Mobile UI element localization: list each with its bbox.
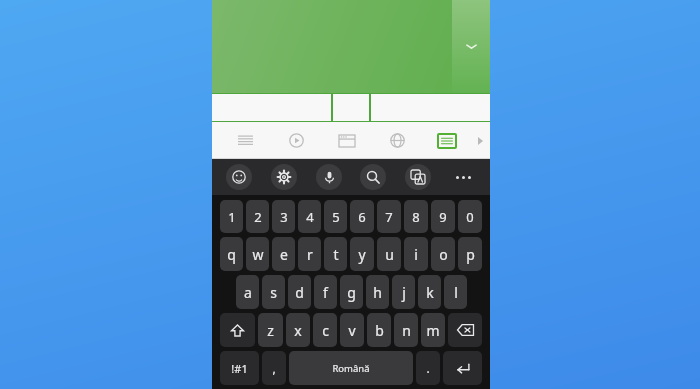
button[interactable]: l bbox=[444, 275, 467, 309]
staticText: c bbox=[322, 321, 329, 340]
staticText: u bbox=[385, 245, 394, 264]
staticText: q bbox=[227, 245, 236, 264]
staticText: i bbox=[414, 245, 418, 264]
button[interactable]: s bbox=[262, 275, 285, 309]
staticText: 3 bbox=[280, 208, 288, 226]
button[interactable]: f bbox=[314, 275, 337, 309]
staticText: Română bbox=[332, 362, 370, 375]
staticText: 9 bbox=[439, 208, 447, 226]
staticText: 4 bbox=[306, 208, 314, 226]
button[interactable]: Expand bbox=[452, 0, 490, 93]
button[interactable]: w bbox=[246, 237, 269, 271]
button[interactable]: Window bbox=[322, 122, 372, 159]
staticText: p bbox=[466, 245, 475, 264]
button[interactable]: b bbox=[367, 313, 391, 347]
button[interactable]: 1 bbox=[220, 200, 243, 233]
staticText: 7 bbox=[385, 208, 393, 226]
staticText: 0 bbox=[466, 208, 474, 226]
staticText: h bbox=[373, 283, 382, 302]
staticText: w bbox=[252, 245, 264, 264]
staticText: x bbox=[294, 321, 302, 340]
button[interactable]: 8 bbox=[404, 200, 428, 233]
button[interactable]: Menu bbox=[220, 122, 271, 159]
button[interactable]: i bbox=[404, 237, 428, 271]
staticText: j bbox=[402, 283, 406, 302]
staticText: n bbox=[402, 321, 411, 340]
staticText: r bbox=[307, 245, 313, 264]
button[interactable]: 2 bbox=[246, 200, 269, 233]
button[interactable]: 0 bbox=[458, 200, 482, 233]
staticText: 6 bbox=[358, 208, 366, 226]
button[interactable]: x bbox=[286, 313, 310, 347]
button[interactable]: More options bbox=[450, 164, 476, 190]
button[interactable]: p bbox=[458, 237, 482, 271]
staticText: v bbox=[348, 321, 356, 340]
button[interactable]: Keyboard bbox=[422, 122, 472, 159]
staticText: d bbox=[295, 283, 304, 302]
staticText: . bbox=[426, 360, 430, 376]
button[interactable]: d bbox=[288, 275, 311, 309]
button[interactable]: e bbox=[272, 237, 295, 271]
button[interactable]: 4 bbox=[298, 200, 321, 233]
staticText: 1 bbox=[228, 208, 236, 226]
button[interactable]: 5 bbox=[324, 200, 347, 233]
button[interactable]: Translate bbox=[405, 164, 431, 190]
staticText: o bbox=[439, 245, 448, 264]
button[interactable]: a bbox=[236, 275, 259, 309]
button[interactable]: Shift bbox=[220, 313, 255, 347]
button[interactable]: 6 bbox=[350, 200, 374, 233]
button[interactable]: r bbox=[298, 237, 321, 271]
button[interactable]: Search bbox=[360, 164, 386, 190]
staticText: z bbox=[267, 321, 274, 340]
button[interactable]: . bbox=[416, 351, 440, 385]
button[interactable]: c bbox=[313, 313, 337, 347]
staticText: 8 bbox=[412, 208, 420, 226]
button[interactable]: Enter bbox=[443, 351, 482, 385]
button[interactable]: !#1 bbox=[220, 351, 259, 385]
staticText: g bbox=[347, 283, 356, 302]
staticText: 2 bbox=[254, 208, 262, 226]
button[interactable]: Web bbox=[372, 122, 422, 159]
staticText: b bbox=[375, 321, 384, 340]
button[interactable]: More tabs bbox=[472, 122, 488, 159]
staticText: s bbox=[270, 283, 277, 302]
button[interactable]: 9 bbox=[431, 200, 455, 233]
staticText: k bbox=[426, 283, 434, 302]
staticText: m bbox=[426, 321, 440, 340]
staticText: t bbox=[333, 245, 339, 264]
button[interactable]: y bbox=[350, 237, 374, 271]
button[interactable]: Settings bbox=[271, 164, 297, 190]
button[interactable]: , bbox=[262, 351, 286, 385]
staticText: a bbox=[244, 283, 252, 302]
button[interactable]: j bbox=[392, 275, 415, 309]
staticText: 5 bbox=[332, 208, 340, 226]
button[interactable]: o bbox=[431, 237, 455, 271]
button[interactable]: m bbox=[421, 313, 445, 347]
staticText: f bbox=[323, 283, 328, 302]
button[interactable]: Play bbox=[271, 122, 322, 159]
button[interactable]: g bbox=[340, 275, 363, 309]
button[interactable]: Backspace bbox=[448, 313, 482, 347]
button[interactable]: q bbox=[220, 237, 243, 271]
button[interactable]: t bbox=[324, 237, 347, 271]
button[interactable]: Emoji bbox=[226, 164, 252, 190]
button[interactable]: v bbox=[340, 313, 364, 347]
staticText: l bbox=[454, 283, 458, 302]
button[interactable]: 3 bbox=[272, 200, 295, 233]
staticText: y bbox=[358, 245, 366, 264]
button[interactable]: u bbox=[377, 237, 401, 271]
button[interactable]: n bbox=[394, 313, 418, 347]
staticText: , bbox=[272, 360, 276, 376]
button[interactable]: z bbox=[258, 313, 283, 347]
staticText: e bbox=[280, 245, 288, 264]
button[interactable]: k bbox=[418, 275, 441, 309]
button[interactable]: Română bbox=[289, 351, 413, 385]
staticText: !#1 bbox=[231, 361, 248, 376]
button[interactable]: h bbox=[366, 275, 389, 309]
button[interactable]: 7 bbox=[377, 200, 401, 233]
button[interactable]: Voice input bbox=[316, 164, 342, 190]
